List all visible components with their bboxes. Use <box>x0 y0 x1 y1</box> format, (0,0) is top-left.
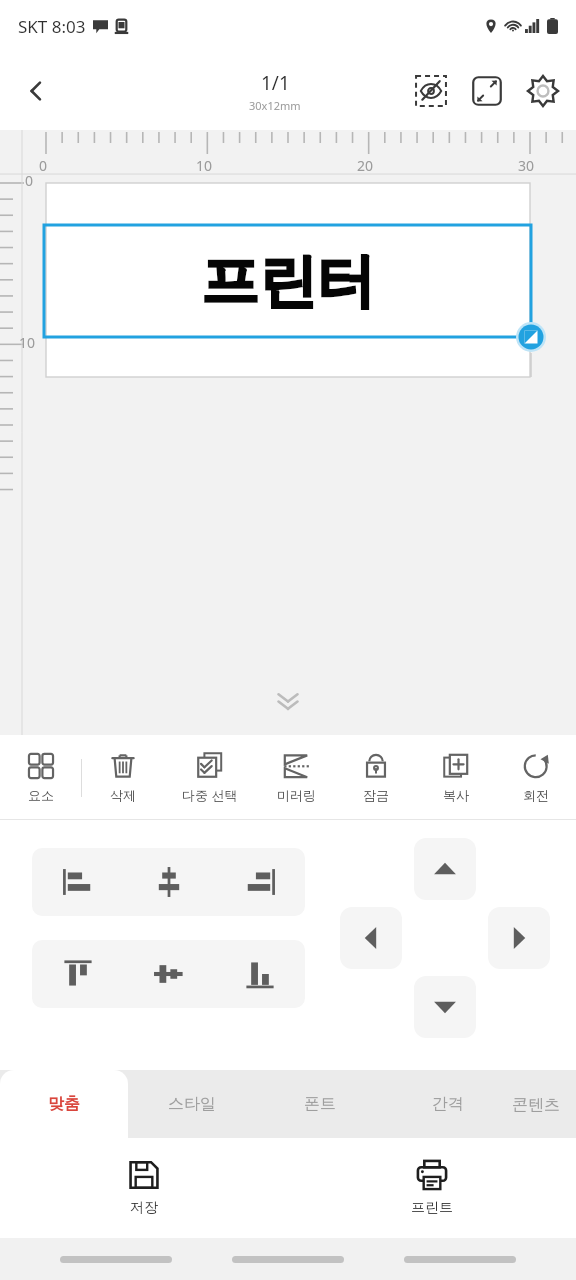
button[interactable]: 다중 선택 <box>163 735 256 820</box>
button[interactable]: 폰트 <box>256 1070 384 1138</box>
staticText: 회전 <box>523 787 549 803</box>
staticText: SKT 8:03 <box>18 15 86 38</box>
staticText: 간격 <box>432 1094 464 1114</box>
button[interactable]: Zoom 1.0x <box>464 68 510 114</box>
button[interactable]: 미러링 <box>256 735 336 820</box>
button[interactable]: Align <box>214 940 305 1008</box>
staticText: 폰트 <box>304 1094 336 1114</box>
button[interactable]: 프린터 <box>44 225 531 337</box>
staticText: 0 <box>39 156 48 175</box>
button[interactable]: 콘텐츠 추 <box>512 1070 576 1138</box>
button[interactable]: Align <box>123 940 214 1008</box>
staticText: 복사 <box>443 787 469 803</box>
staticText: 20 <box>357 156 374 175</box>
staticText: 저장 <box>130 1199 158 1217</box>
button[interactable]: 회전 <box>496 735 576 820</box>
button[interactable]: Move up <box>414 838 476 900</box>
staticText: 프린터 <box>201 245 375 318</box>
button[interactable]: Hide preview <box>408 68 454 114</box>
button[interactable]: 간격 <box>384 1070 512 1138</box>
staticText: 1/1 <box>261 70 290 96</box>
button[interactable]: 맞춤 <box>0 1070 128 1138</box>
staticText: 10 <box>19 333 36 352</box>
button[interactable]: Move right <box>488 907 550 969</box>
button[interactable]: Navigation <box>60 1256 172 1263</box>
staticText: 프린트 <box>411 1199 453 1217</box>
staticText: 30x12mm <box>249 98 301 113</box>
staticText: 삭제 <box>110 787 136 803</box>
staticText: 0 <box>25 171 34 190</box>
button[interactable]: 복사 <box>416 735 496 820</box>
button[interactable]: 잠금 <box>336 735 416 820</box>
staticText: 스타일 <box>168 1094 216 1114</box>
button[interactable]: 요소 <box>0 735 81 820</box>
staticText: 콘텐츠 추 <box>512 1093 576 1115</box>
staticText: 10 <box>196 156 213 175</box>
button[interactable]: Move left <box>340 907 402 969</box>
staticText: 잠금 <box>363 787 389 803</box>
button[interactable]: Align <box>32 940 123 1008</box>
staticText: 30 <box>518 156 535 175</box>
button[interactable]: Back <box>8 63 64 119</box>
button[interactable]: 삭제 <box>82 735 163 820</box>
button[interactable]: Align <box>32 848 123 916</box>
button[interactable]: Settings <box>520 68 566 114</box>
button[interactable]: Align <box>123 848 214 916</box>
button[interactable]: Collapse <box>264 677 312 725</box>
button[interactable]: 프린트 <box>288 1138 576 1238</box>
button[interactable]: Move down <box>414 976 476 1038</box>
staticText: 다중 선택 <box>182 786 238 804</box>
button[interactable]: 저장 <box>0 1138 288 1238</box>
button[interactable]: 스타일 <box>128 1070 256 1138</box>
staticText: 맞춤 <box>48 1094 80 1114</box>
button[interactable]: Navigation <box>404 1256 516 1263</box>
staticText: 미러링 <box>277 787 316 803</box>
button[interactable]: Navigation <box>232 1256 344 1263</box>
staticText: 요소 <box>28 787 54 803</box>
button[interactable]: Align <box>214 848 305 916</box>
